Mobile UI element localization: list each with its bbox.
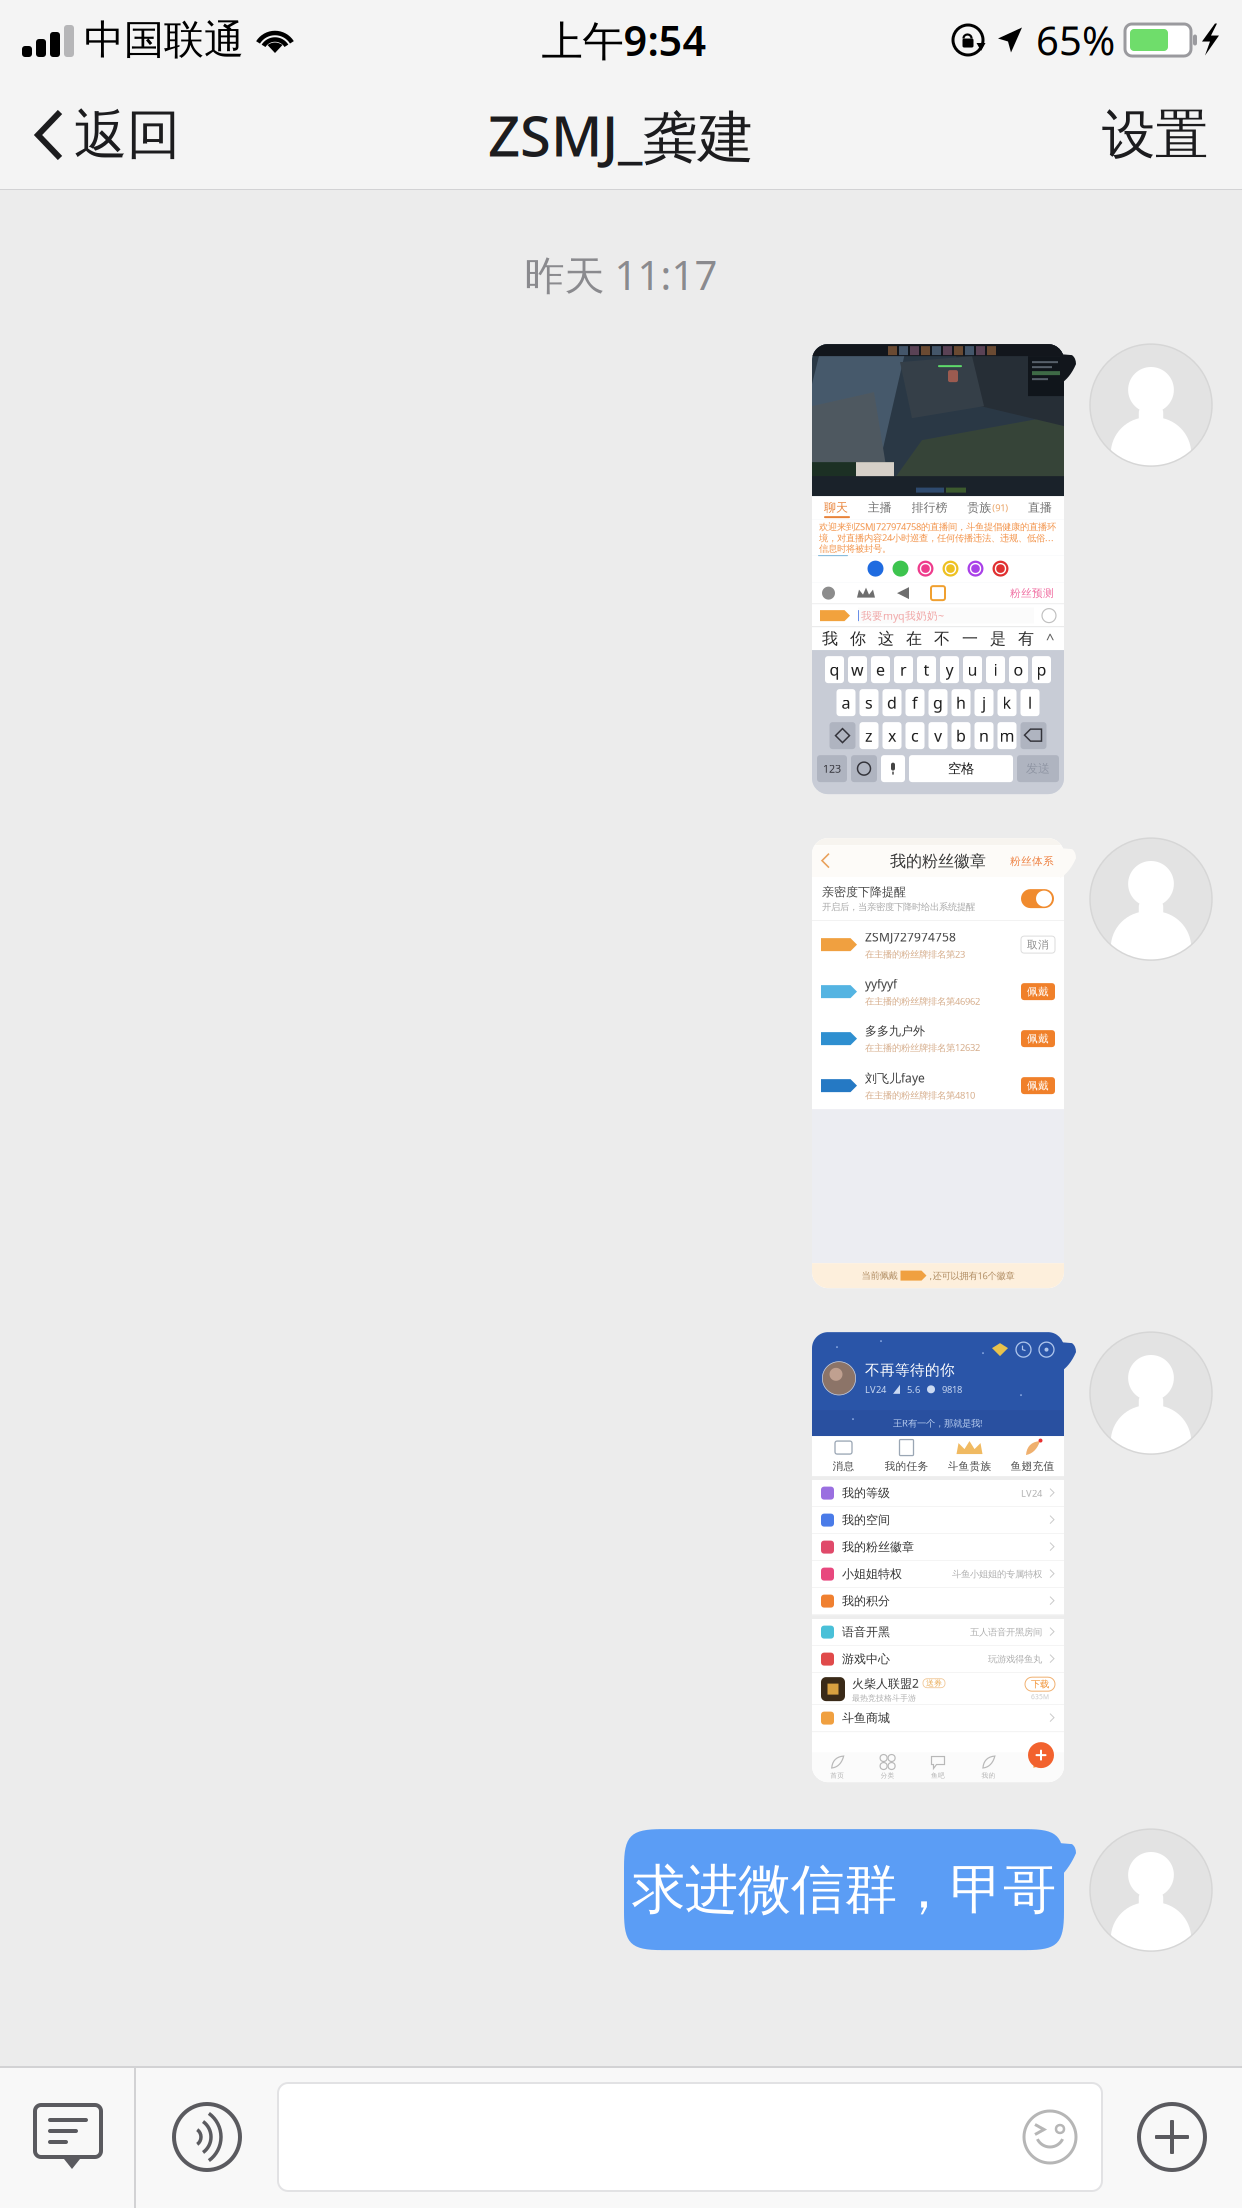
staticText: 我 bbox=[822, 629, 838, 648]
staticText: ZSMJ_龚建 bbox=[488, 98, 754, 172]
staticText: 不再等待的你 bbox=[865, 1361, 955, 1379]
staticText: 我的空间 bbox=[842, 1513, 890, 1527]
button[interactable]: Photo message bbox=[812, 838, 1064, 1288]
staticText: 我的粉丝徽章 bbox=[890, 851, 986, 871]
staticText: i bbox=[993, 659, 997, 680]
staticText: 取消 bbox=[1027, 938, 1049, 951]
staticText: 贵族 bbox=[967, 500, 991, 515]
staticText: 我要myq我奶奶~ bbox=[861, 608, 944, 623]
staticText: h bbox=[956, 692, 966, 713]
staticText: z bbox=[865, 725, 873, 746]
staticText: 王R有一个，那就是我! bbox=[893, 1417, 983, 1429]
button[interactable]: More bbox=[1102, 2066, 1242, 2208]
staticText: 亲密度下降提醒 bbox=[822, 884, 906, 899]
button[interactable]: 求进微信群，甲哥 bbox=[624, 1829, 1064, 1950]
staticText: f bbox=[912, 692, 918, 713]
staticText: 境，对直播内容24小时巡查，任何传播违法、违规、低俗等不良 bbox=[819, 531, 1057, 544]
staticText: 小姐姐特权 bbox=[842, 1567, 902, 1581]
staticText: LV24 bbox=[865, 1383, 886, 1395]
staticText: 首页 bbox=[830, 1771, 844, 1780]
staticText: r bbox=[900, 659, 907, 680]
staticText: 我的等级 bbox=[842, 1486, 890, 1500]
staticText: b bbox=[956, 725, 966, 746]
staticText: j bbox=[982, 692, 986, 713]
button[interactable]: Contact avatar bbox=[1064, 838, 1212, 960]
staticText: 有 bbox=[1018, 629, 1034, 648]
staticText: p bbox=[1036, 659, 1046, 680]
staticText: t bbox=[923, 659, 929, 680]
button[interactable]: 返回 bbox=[0, 80, 214, 190]
button[interactable]: Quick replies bbox=[0, 2066, 136, 2208]
staticText: m bbox=[999, 725, 1014, 746]
staticText: u bbox=[967, 659, 977, 680]
staticText: 当前佩戴 bbox=[861, 1270, 897, 1281]
staticText: 不 bbox=[934, 629, 950, 648]
staticText: 是 bbox=[990, 629, 1006, 648]
staticText: 聊天 bbox=[824, 500, 848, 515]
staticText: d bbox=[887, 692, 897, 713]
staticText: yyfyyf bbox=[865, 976, 897, 992]
staticText: 返回 bbox=[74, 102, 180, 168]
staticText: 设置 bbox=[1102, 102, 1208, 168]
staticText: 佩戴 bbox=[1027, 985, 1049, 998]
staticText: 一 bbox=[962, 629, 978, 648]
staticText: 在主播的粉丝牌排名第12632 bbox=[865, 1041, 980, 1054]
staticText: 这 bbox=[878, 629, 894, 648]
staticText: 粉丝体系 bbox=[1010, 855, 1054, 868]
button[interactable]: Photo message bbox=[812, 1332, 1064, 1782]
staticText: 昨天 11:17 bbox=[524, 248, 717, 301]
staticText: 直播 bbox=[1028, 500, 1052, 515]
button[interactable]: Contact avatar bbox=[1064, 344, 1212, 466]
button[interactable]: 设置 bbox=[1068, 80, 1242, 190]
staticText: c bbox=[911, 725, 919, 746]
staticText: 5.6 bbox=[907, 1383, 920, 1395]
staticText: 刘飞儿faye bbox=[865, 1070, 925, 1086]
staticText: 求进微信群，甲哥 bbox=[632, 1857, 1056, 1922]
staticText: 主播 bbox=[868, 500, 892, 515]
staticText: 佩戴 bbox=[1027, 1032, 1049, 1045]
staticText: 排行榜 bbox=[911, 500, 947, 515]
staticText: 五人语音开黑房间 bbox=[970, 1626, 1042, 1638]
staticText: g bbox=[933, 692, 943, 713]
staticText: 下载 bbox=[1031, 1678, 1049, 1690]
button[interactable]: Voice message bbox=[136, 2066, 278, 2208]
staticText: ,还可以拥有16个徽章 bbox=[929, 1269, 1014, 1282]
staticText: 发送 bbox=[1026, 761, 1050, 776]
button[interactable]: Photo message bbox=[812, 344, 1064, 794]
staticText: 我的粉丝徽章 bbox=[842, 1540, 914, 1554]
staticText: LV24 bbox=[1021, 1487, 1042, 1499]
staticText: 语音开黑 bbox=[842, 1625, 890, 1639]
button[interactable]: Message field bbox=[278, 2083, 1102, 2191]
staticText: 分类 bbox=[881, 1771, 895, 1780]
staticText: 123 bbox=[823, 761, 841, 776]
staticText: 信息时将被封号。 bbox=[819, 543, 891, 554]
staticText: x bbox=[888, 725, 896, 746]
staticText: 空格 bbox=[948, 760, 974, 777]
staticText: 在主播的粉丝牌排名第23 bbox=[865, 948, 965, 960]
staticText: 斗鱼商城 bbox=[842, 1711, 890, 1725]
staticText: 9818 bbox=[942, 1383, 962, 1395]
staticText: 消息 bbox=[832, 1460, 854, 1473]
staticText: 斗鱼小姐姐的专属特权 bbox=[952, 1568, 1042, 1580]
staticText: q bbox=[829, 659, 839, 680]
staticText: v bbox=[934, 725, 942, 746]
staticText: ^ bbox=[1046, 629, 1054, 648]
staticText: 在主播的粉丝牌排名第4810 bbox=[865, 1089, 975, 1101]
staticText: 我的积分 bbox=[842, 1594, 890, 1608]
staticText: 粉丝预测 bbox=[1010, 587, 1054, 600]
staticText: 在 bbox=[906, 629, 922, 648]
staticText: 斗鱼贵族 bbox=[947, 1460, 991, 1473]
staticText: 上午9:54 bbox=[541, 13, 706, 67]
button[interactable]: My avatar bbox=[1064, 1829, 1212, 1951]
staticText: 佩戴 bbox=[1027, 1079, 1049, 1092]
staticText: 65% bbox=[1036, 13, 1115, 66]
staticText: 我的 bbox=[981, 1771, 995, 1780]
button[interactable]: Contact avatar bbox=[1064, 1332, 1212, 1454]
staticText: (91) bbox=[992, 501, 1008, 514]
staticText: 我的任务 bbox=[884, 1460, 928, 1473]
staticText: 火柴人联盟2 bbox=[852, 1675, 919, 1691]
staticText: 最热竞技格斗手游 bbox=[852, 1693, 916, 1703]
staticText: 玩游戏得鱼丸 bbox=[988, 1653, 1042, 1665]
staticText: 送券 bbox=[926, 1678, 942, 1688]
staticText: y bbox=[945, 659, 953, 680]
